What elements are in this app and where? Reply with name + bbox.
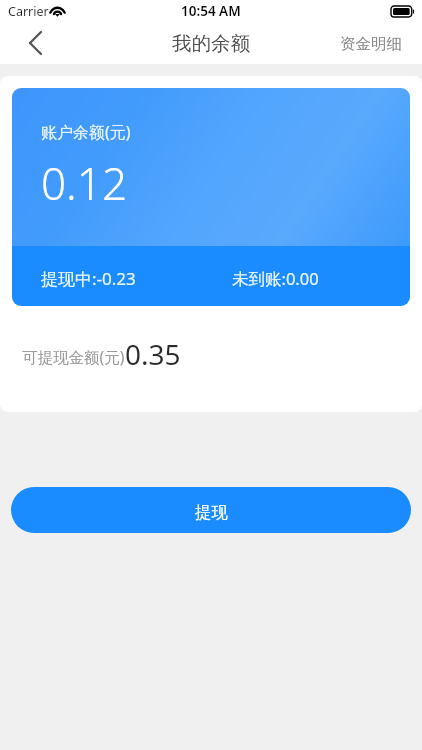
staticText: 提现 bbox=[195, 502, 228, 523]
staticText: 可提现金额(元) bbox=[22, 346, 125, 367]
staticText: 我的余额 bbox=[172, 31, 250, 56]
button[interactable]: Back bbox=[0, 22, 46, 64]
staticText: 未到账:0.00 bbox=[232, 267, 319, 290]
staticText: Carrier bbox=[8, 3, 49, 20]
button[interactable]: 资金明细 bbox=[320, 24, 422, 64]
staticText: 提现中:-0.23 bbox=[41, 267, 136, 290]
staticText: 0.35 bbox=[125, 335, 181, 373]
staticText: 10:54 AM bbox=[181, 2, 241, 20]
staticText: 0.12 bbox=[41, 153, 128, 213]
staticText: 账户余额(元) bbox=[41, 121, 131, 143]
button[interactable]: 提现 bbox=[11, 487, 411, 533]
staticText: 资金明细 bbox=[340, 34, 402, 54]
